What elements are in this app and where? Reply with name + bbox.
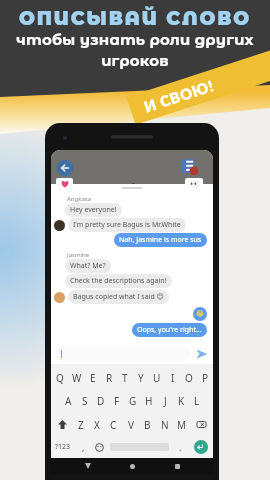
staticText: I — [171, 371, 175, 385]
button[interactable]: Send — [195, 347, 208, 360]
button[interactable]: Shift — [51, 413, 73, 436]
staticText: Hey everyone! — [70, 205, 117, 215]
button[interactable]: Y — [133, 367, 149, 389]
staticText: M — [177, 418, 187, 432]
staticText: Q — [56, 371, 64, 385]
staticText: E — [90, 371, 96, 385]
staticText: ?123 — [55, 442, 71, 452]
button[interactable]: Emoji — [91, 436, 107, 458]
staticText: C — [110, 418, 117, 432]
staticText: Check the descriptions again! — [70, 276, 167, 286]
staticText: 😂 — [196, 310, 205, 318]
button[interactable]: Nah, Jasmine is more sus — [114, 233, 207, 247]
button[interactable]: W — [68, 367, 85, 389]
button[interactable] — [56, 346, 190, 361]
button[interactable]: O — [181, 367, 197, 389]
staticText: What? Me? — [70, 261, 106, 271]
staticText: ↵ — [197, 442, 205, 452]
staticText: L — [194, 394, 200, 408]
staticText: . — [179, 441, 182, 453]
button[interactable]: Backspace — [190, 413, 213, 436]
staticText: , — [82, 441, 85, 453]
staticText: Oops, you're right... — [137, 325, 202, 335]
staticText: ОПИСЫВАЙ СЛОВО — [0, 7, 270, 30]
button[interactable]: H — [141, 389, 157, 413]
button[interactable]: Home — [124, 458, 140, 474]
button[interactable]: N — [156, 413, 173, 436]
button[interactable]: Back — [80, 458, 96, 474]
button[interactable]: Bagus copied what I said 😊 — [68, 290, 169, 304]
button[interactable]: Z — [73, 413, 89, 436]
button[interactable]: , — [75, 436, 91, 458]
staticText: Bagus copied what I said 😊 — [73, 292, 164, 302]
staticText: 👀 — [190, 180, 199, 188]
button[interactable]: ?123 — [51, 436, 75, 458]
staticText: G — [129, 394, 137, 408]
button[interactable]: Recents — [169, 458, 185, 474]
button[interactable]: Oops, you're right... — [132, 323, 207, 337]
staticText: Jasmine — [67, 251, 90, 259]
staticText: S — [82, 394, 88, 408]
button[interactable]: Q — [51, 367, 68, 389]
button[interactable]: G — [125, 389, 141, 413]
button[interactable]: A — [60, 389, 77, 413]
staticText: чтобы узнать роли других игроков — [0, 30, 270, 69]
button[interactable]: J — [157, 389, 173, 413]
staticText: Settings — [107, 179, 158, 197]
staticText: J — [164, 394, 167, 408]
button[interactable]: B — [139, 413, 156, 436]
staticText: R — [106, 371, 113, 385]
button[interactable]: D — [93, 389, 109, 413]
staticText: D — [97, 394, 105, 408]
staticText: N — [161, 418, 169, 432]
button[interactable]: X — [89, 413, 105, 436]
button[interactable]: L — [189, 389, 205, 413]
button[interactable]: . — [172, 436, 188, 458]
staticText: Y — [138, 371, 144, 385]
button[interactable]: I — [165, 367, 181, 389]
button[interactable]: U — [149, 367, 165, 389]
button[interactable]: R — [101, 367, 117, 389]
staticText: A — [65, 394, 72, 408]
button[interactable]: Hey everyone! — [65, 203, 122, 217]
button[interactable]: C — [105, 413, 122, 436]
button[interactable]: Back — [57, 160, 73, 176]
staticText: K — [178, 394, 185, 408]
staticText: V — [128, 418, 134, 432]
button[interactable]: Cards — [181, 158, 198, 175]
staticText: B — [144, 418, 151, 432]
staticText: Angkasa — [67, 195, 92, 203]
staticText: Nah, Jasmine is more sus — [119, 235, 202, 245]
button[interactable]: What? Me? — [65, 259, 111, 273]
staticText: Z — [78, 418, 84, 432]
button[interactable]: M — [173, 413, 190, 436]
button[interactable]: S — [77, 389, 93, 413]
button[interactable]: I'm pretty sure Bagus is Mr.White — [68, 218, 186, 232]
button[interactable]: Check the descriptions again! — [65, 274, 172, 288]
staticText: T — [122, 371, 128, 385]
staticText: U — [153, 371, 161, 385]
button[interactable]: E — [85, 367, 101, 389]
staticText: I'm pretty sure Bagus is Mr.White — [73, 220, 181, 230]
staticText: X — [94, 418, 100, 432]
staticText: H — [145, 394, 153, 408]
button[interactable]: Enter — [194, 440, 208, 454]
staticText: И СВОЮ! — [142, 76, 217, 116]
button[interactable]: F — [109, 389, 125, 413]
button[interactable]: T — [117, 367, 133, 389]
staticText: F — [114, 394, 120, 408]
button[interactable]: P — [197, 367, 213, 389]
staticText: W — [72, 371, 82, 385]
button[interactable]: V — [122, 413, 139, 436]
staticText: O — [185, 371, 193, 385]
staticText: P — [202, 371, 209, 385]
button[interactable]: K — [173, 389, 189, 413]
